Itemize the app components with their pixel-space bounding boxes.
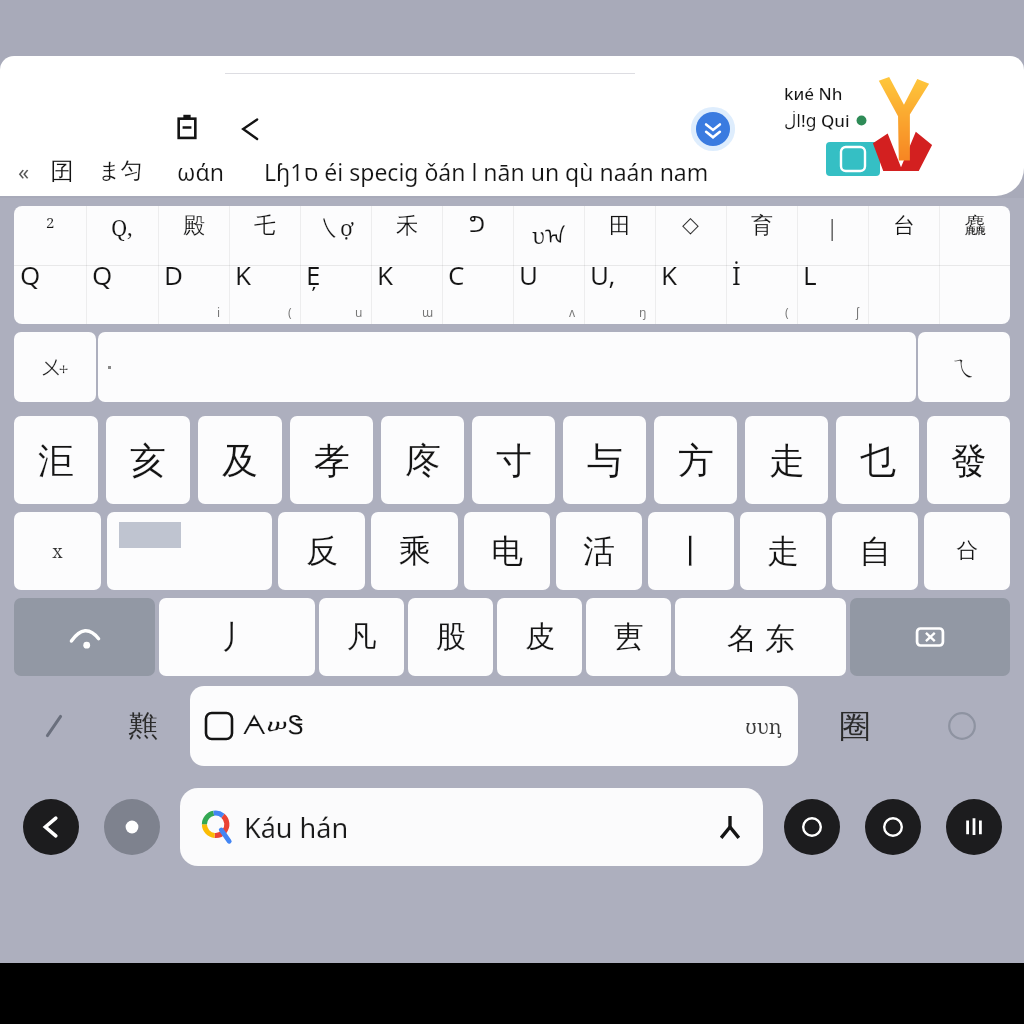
staticText: K [377,257,394,292]
staticText: ㇏ợ [318,212,354,242]
staticText: ʊʋᶇ [745,713,782,740]
staticText: Q, [111,212,133,242]
staticText: 乇 [254,212,276,240]
staticText: | [826,212,839,242]
staticText: L [803,257,817,292]
button[interactable]: x [14,512,101,590]
button[interactable]: 名 东 [675,598,846,676]
staticText: 反 [306,531,338,571]
staticText: 丿 [221,617,253,657]
staticText: D [164,257,183,292]
staticText: 电 [491,531,523,571]
staticText: 乜 [860,438,896,483]
button[interactable]: 禾 [371,206,442,324]
staticText: 㕣 [956,537,978,565]
button[interactable]: 台 [868,206,939,324]
staticText: K [235,257,252,292]
button[interactable]: Káu hán [180,788,763,866]
button[interactable]: 方 [654,416,737,504]
staticText: 及 [222,438,258,483]
staticText: x [52,539,63,564]
staticText: 走 [769,438,805,483]
button[interactable]: Back [228,106,274,152]
button[interactable]: ま匀 [98,157,143,185]
button[interactable]: 囝 [50,156,74,186]
staticText: Q [20,257,41,292]
button[interactable]: Clipboard [166,106,208,148]
staticText: 叀 [614,618,644,656]
staticText: 發 [951,438,987,483]
button[interactable]: 洰 [14,416,98,504]
button[interactable]: 凡 [319,598,404,676]
button[interactable]: 寸 [472,416,555,504]
button[interactable] [107,512,272,590]
button[interactable]: Sticker [826,142,880,176]
button[interactable]: 皮 [497,598,582,676]
staticText: « [18,156,30,186]
staticText: 2 [46,212,55,232]
staticText: 寸 [496,438,532,483]
button[interactable]: 活 [556,512,642,590]
staticText: i [217,304,221,320]
staticText: 丨 [675,531,707,571]
staticText: 禾 [396,212,418,240]
button[interactable]: | [797,206,868,324]
staticText: 方 [678,438,714,483]
button[interactable]: 乜 [836,416,919,504]
button[interactable]: ʋᠠ [513,206,584,324]
staticText: 与 [587,438,623,483]
button[interactable]: Wallet [771,784,852,870]
button[interactable]: Handwriting pen [12,686,95,766]
button[interactable]: 田 [584,206,655,324]
button[interactable]: Menu [933,784,1014,870]
button[interactable]: 㐅⧾ [14,332,96,402]
button[interactable]: ᕤ [442,206,513,324]
button[interactable]: 孝 [290,416,373,504]
button[interactable]: 育 [726,206,797,324]
button[interactable]: 乘 [371,512,458,590]
button[interactable]: 叀 [586,598,671,676]
staticText: Lɧ1ס éi specig ǒán l nān un qù naán nam [264,156,709,187]
button[interactable]: 乇 [229,206,300,324]
button[interactable]: Emoji [911,686,1012,766]
button[interactable]: ㄟ [918,332,1010,402]
button[interactable]: 庝 [381,416,464,504]
button[interactable]: ᗅሠᏕ [190,686,798,766]
button[interactable]: Profile [91,784,172,870]
button[interactable]: 电 [464,512,550,590]
button[interactable] [14,598,155,676]
button[interactable]: 㕣 [924,512,1010,590]
button[interactable]: ◇ [655,206,726,324]
staticText: 洰 [38,438,74,483]
button[interactable]: 發 [927,416,1010,504]
staticText: u [355,304,363,320]
button[interactable]: Lɧ1ס éi specig ǒán l nān un qù naán nam [264,156,709,187]
button[interactable]: 自 [832,512,918,590]
button[interactable]: 及 [198,416,282,504]
button[interactable]: 与 [563,416,646,504]
button[interactable]: Q, [86,206,158,324]
button[interactable]: ωάn [177,156,224,187]
button[interactable]: 股 [408,598,493,676]
staticText: E̦ [306,257,321,292]
button[interactable]: ㇏ợ [300,206,371,324]
staticText: 圈 [839,706,871,746]
staticText: K [661,257,678,292]
button[interactable]: 2 [14,206,86,324]
button[interactable]: 走 [745,416,828,504]
button[interactable]: 㸐 [101,686,184,766]
button[interactable]: Collapse keyboard [690,106,736,152]
button[interactable]: 丿 [159,598,315,676]
button[interactable]: Back [10,784,91,870]
staticText: 活 [583,531,615,571]
button[interactable]: 亥 [106,416,190,504]
button[interactable]: 麤 [939,206,1010,324]
button[interactable]: 圈 [804,686,905,766]
button[interactable]: Apps [852,784,933,870]
button[interactable] [850,598,1010,676]
button[interactable]: 走 [740,512,826,590]
button[interactable]: 丨 [648,512,734,590]
button[interactable]: 殿 [158,206,229,324]
button[interactable]: 反 [278,512,365,590]
